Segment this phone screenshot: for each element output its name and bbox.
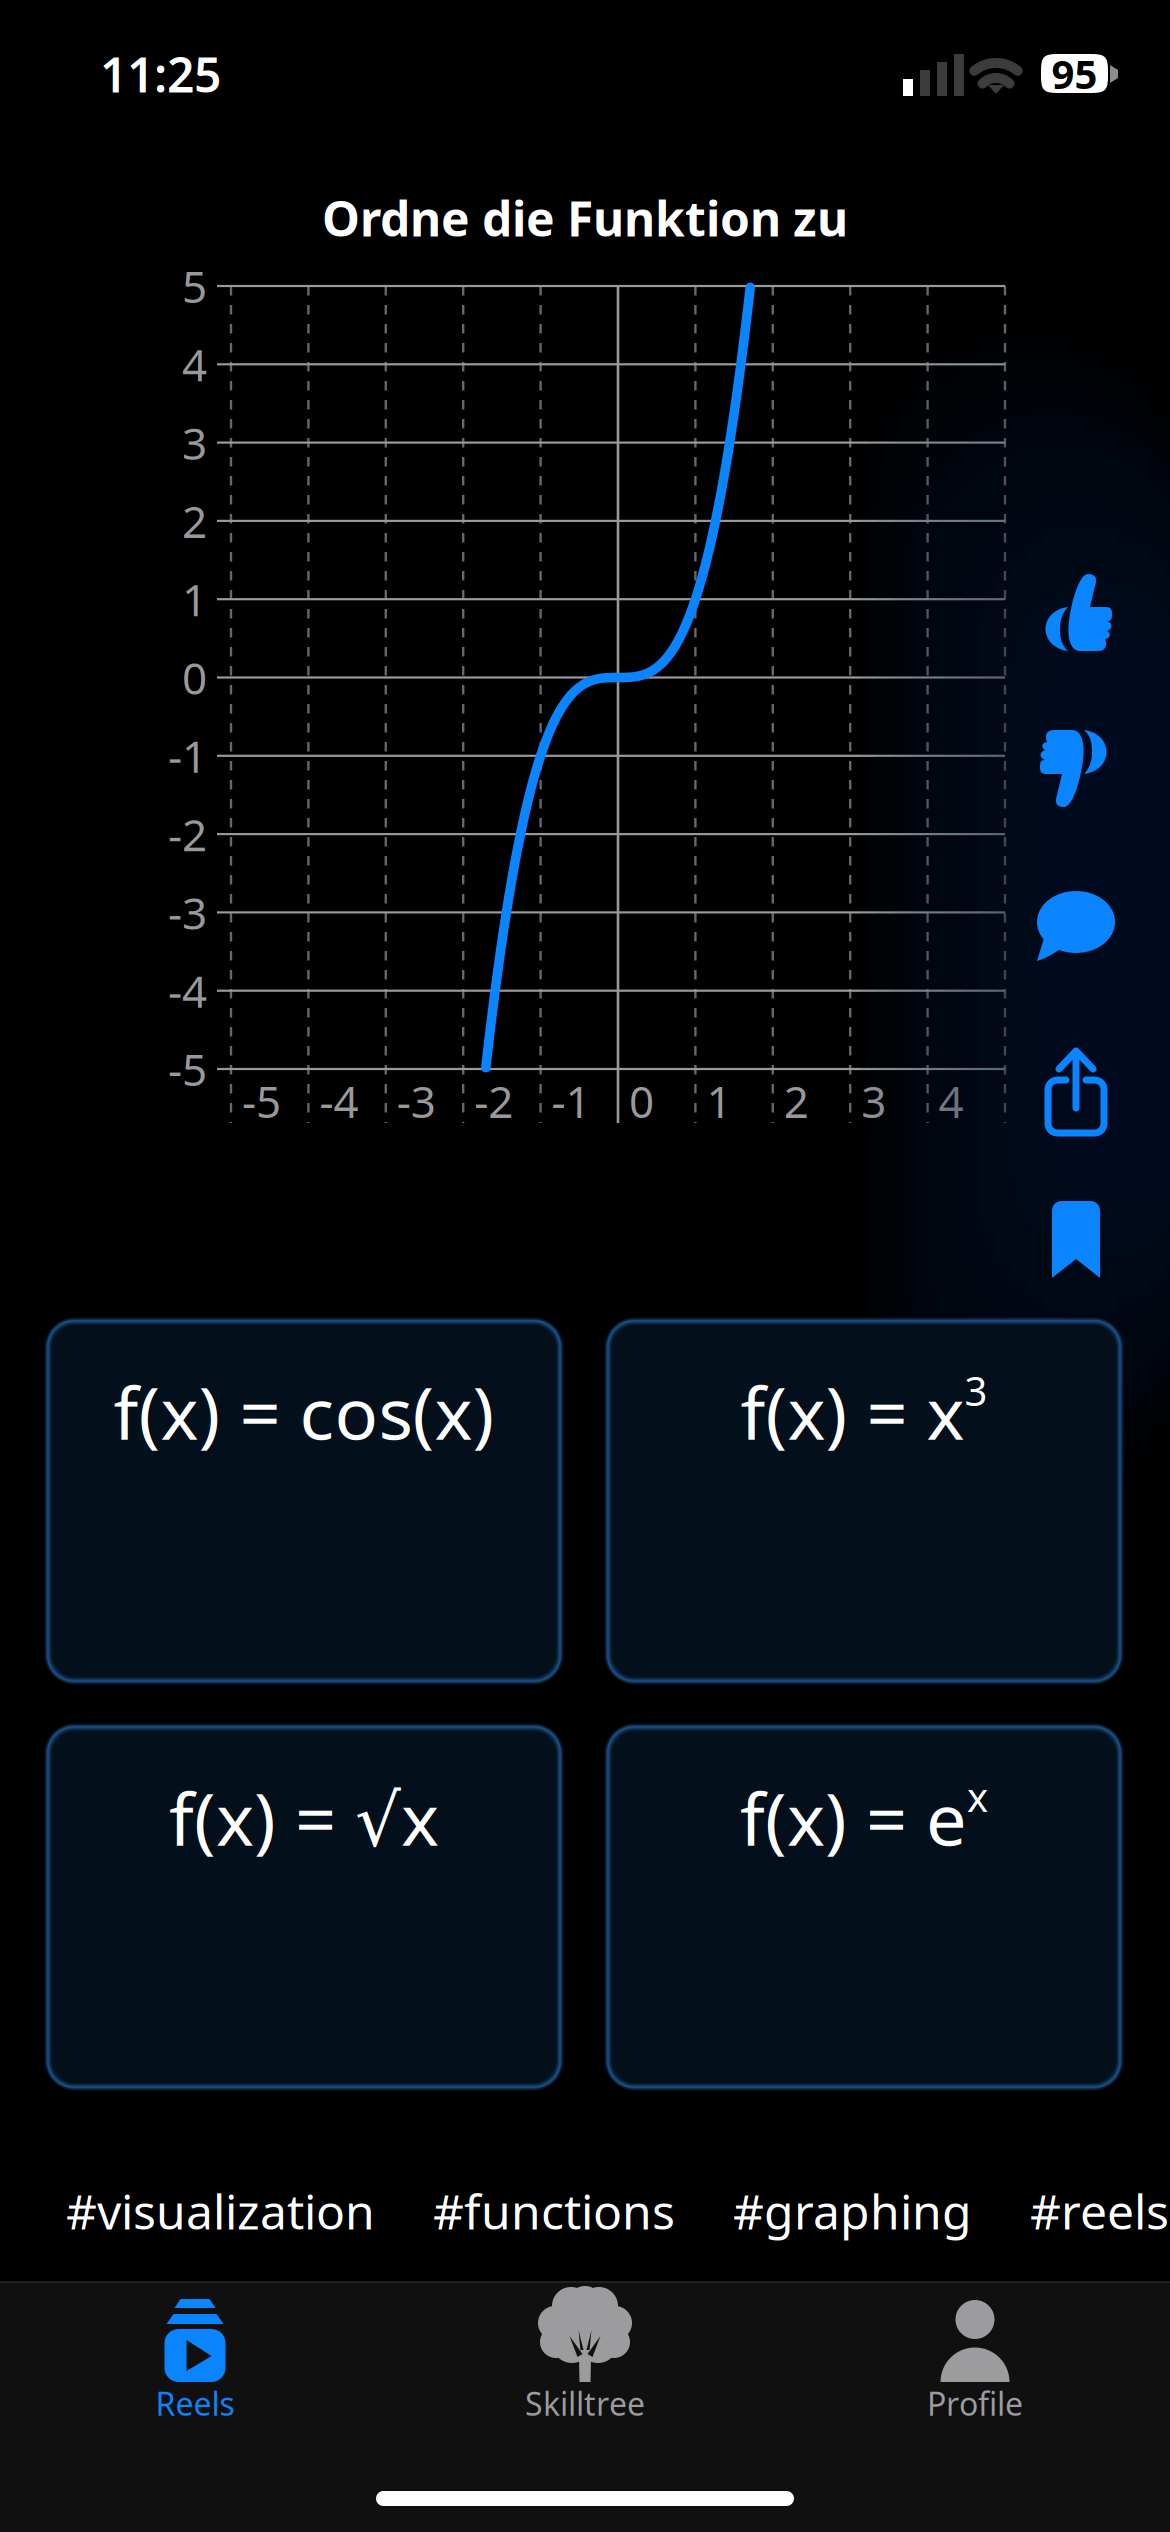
staticText: 5 [182, 257, 207, 315]
staticText: 0 [182, 648, 207, 707]
staticText: -1 [168, 727, 207, 785]
staticText: Skilltree [525, 2382, 645, 2424]
button[interactable]: f(x) = cos(x) [48, 1321, 560, 1681]
button[interactable]: #functions [433, 2179, 675, 2243]
staticText: 1 [182, 570, 207, 628]
staticText: -4 [319, 1072, 358, 1130]
button[interactable]: f(x) = √x [48, 1727, 560, 2087]
button[interactable]: Profile [780, 2281, 1170, 2441]
staticText: -5 [168, 1040, 207, 1098]
staticText: f(x) = e [740, 1770, 967, 1866]
button[interactable]: #visualization [66, 2179, 375, 2243]
staticText: -1 [552, 1072, 591, 1130]
staticText: x [967, 1770, 988, 1823]
button[interactable]: Like [1021, 548, 1131, 678]
staticText: -5 [242, 1072, 281, 1130]
staticText: 4 [939, 1072, 964, 1130]
staticText: 1 [706, 1072, 731, 1130]
staticText: 2 [784, 1072, 809, 1130]
staticText: -4 [168, 961, 207, 1020]
staticText: 11:25 [100, 42, 221, 106]
staticText: #graphing [733, 2179, 972, 2243]
staticText: 95 [1051, 47, 1097, 100]
staticText: f(x) = x [740, 1364, 964, 1460]
staticText: f(x) = cos(x) [113, 1364, 494, 1460]
staticText: 2 [182, 492, 207, 550]
button[interactable]: Skilltree [390, 2281, 780, 2441]
button[interactable]: #graphing [733, 2179, 972, 2243]
staticText: 3 [964, 1364, 987, 1417]
button[interactable]: Share [1021, 1025, 1131, 1155]
button[interactable]: #reels [1030, 2179, 1169, 2243]
staticText: -3 [168, 883, 207, 942]
button[interactable]: Reels [0, 2281, 390, 2441]
button[interactable]: f(x) = x³ [608, 1321, 1120, 1681]
staticText: Reels [155, 2382, 234, 2424]
button[interactable]: Bookmark [1021, 1175, 1131, 1305]
staticText: #visualization [66, 2179, 375, 2243]
button[interactable]: f(x) = eˣ [608, 1727, 1120, 2087]
button[interactable]: Dislike [1021, 703, 1131, 833]
staticText: f(x) = √x [169, 1770, 439, 1866]
button[interactable]: Comments [1021, 862, 1131, 992]
staticText: 0 [629, 1072, 654, 1130]
staticText: 3 [861, 1072, 886, 1130]
staticText: Ordne die Funktion zu [322, 186, 848, 250]
staticText: #reels [1030, 2179, 1169, 2243]
staticText: #functions [433, 2179, 675, 2243]
staticText: Profile [927, 2382, 1023, 2424]
staticText: -3 [397, 1072, 436, 1130]
staticText: 3 [182, 413, 207, 472]
staticText: -2 [474, 1072, 513, 1130]
staticText: -2 [168, 805, 207, 863]
staticText: 4 [182, 335, 207, 393]
